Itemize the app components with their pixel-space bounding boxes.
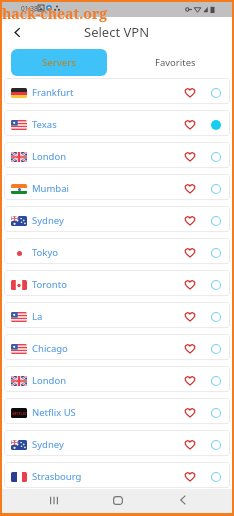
button[interactable]: Select server — [205, 178, 226, 199]
staticText: Frankfurt — [32, 86, 74, 99]
staticText: Strasbourg — [32, 470, 82, 483]
button[interactable]: Toronto — [4, 270, 230, 296]
staticText: La — [32, 310, 43, 323]
button[interactable]: Select server — [205, 242, 226, 263]
button[interactable]: London — [4, 366, 230, 392]
staticText: Favorites — [155, 56, 196, 69]
button[interactable]: Favorite — [179, 434, 200, 455]
button[interactable]: Sydney — [4, 430, 230, 456]
button[interactable]: Mumbai — [4, 174, 230, 200]
button[interactable]: Favorite — [179, 306, 200, 327]
staticText: 01:38 — [21, 4, 38, 13]
button[interactable]: Select server — [205, 370, 226, 391]
button[interactable]: Select server — [205, 146, 226, 167]
button[interactable]: Favorite — [179, 146, 200, 167]
button[interactable]: Recent apps — [43, 488, 65, 512]
button[interactable]: Select server — [205, 210, 226, 231]
button[interactable]: Select server — [205, 274, 226, 295]
button[interactable]: Home — [107, 488, 129, 512]
staticText: Sydney — [32, 438, 64, 451]
staticText: Toronto — [32, 278, 67, 291]
button[interactable]: Favorite — [179, 338, 200, 359]
button[interactable]: Favorite — [179, 466, 200, 487]
button[interactable]: Favorite — [179, 242, 200, 263]
staticText: Mumbai — [32, 182, 69, 195]
button[interactable]: Select server — [205, 434, 226, 455]
staticText: NETFLIX — [12, 411, 27, 416]
staticText: Sydney — [32, 214, 64, 227]
staticText: Chicago — [32, 342, 68, 355]
button[interactable]: Sydney — [4, 206, 230, 232]
button[interactable]: Back — [172, 488, 194, 512]
button[interactable]: Texas — [4, 110, 230, 136]
button[interactable]: Back — [4, 19, 30, 45]
button[interactable]: La — [4, 302, 230, 328]
button[interactable]: Select server — [205, 82, 226, 103]
staticText: hack-cheat.org — [2, 4, 108, 23]
button[interactable]: London — [4, 142, 230, 168]
staticText: London — [32, 374, 67, 387]
button[interactable]: Favorites — [128, 49, 223, 76]
button[interactable]: Strasbourg — [4, 462, 230, 488]
button[interactable]: Favorite — [179, 178, 200, 199]
button[interactable]: Select server — [205, 466, 226, 487]
button[interactable]: Favorite — [179, 114, 200, 135]
button[interactable]: Favorite — [179, 370, 200, 391]
button[interactable]: NETFLIX — [4, 398, 230, 424]
button[interactable]: Select server — [205, 402, 226, 423]
button[interactable]: Chicago — [4, 334, 230, 360]
button[interactable]: Favorite — [179, 210, 200, 231]
button[interactable]: Frankfurt — [4, 78, 230, 104]
staticText: Netflix US — [32, 406, 76, 419]
button[interactable]: Select server — [205, 338, 226, 359]
button[interactable]: Select server — [205, 306, 226, 327]
staticText: Texas — [32, 118, 57, 131]
staticText: Tokyo — [32, 246, 59, 259]
button[interactable]: Favorite — [179, 402, 200, 423]
button[interactable]: Select server — [205, 114, 226, 135]
staticText: London — [32, 150, 67, 163]
staticText: Select VPN — [84, 23, 150, 41]
button[interactable]: Favorite — [179, 274, 200, 295]
button[interactable]: Favorite — [179, 82, 200, 103]
button[interactable]: Servers — [11, 49, 107, 76]
staticText: Servers — [42, 56, 76, 69]
button[interactable]: Tokyo — [4, 238, 230, 264]
